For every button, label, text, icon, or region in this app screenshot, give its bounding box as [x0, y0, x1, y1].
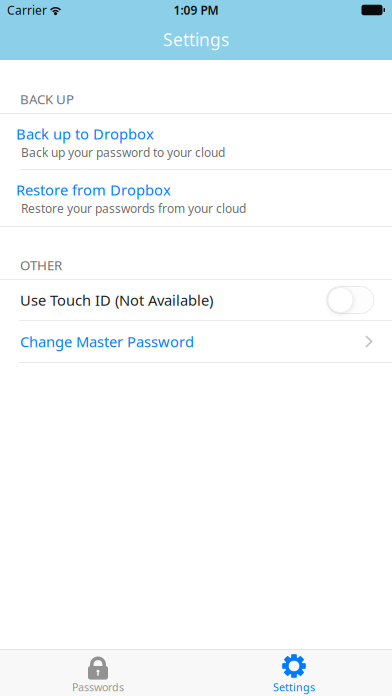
staticText: Carrier: [7, 2, 47, 18]
staticText: Back up your password to your cloud: [21, 144, 225, 160]
staticText: Change Master Password: [20, 332, 194, 351]
staticText: Settings: [163, 28, 229, 51]
staticText: Use Touch ID (Not Available): [20, 290, 213, 310]
button[interactable]: Back up to Dropbox: [0, 114, 392, 169]
staticText: Settings: [273, 680, 315, 694]
staticText: OTHER: [20, 256, 62, 274]
staticText: Restore your passwords from your cloud: [21, 200, 246, 216]
staticText: Back up to Dropbox: [16, 124, 154, 143]
button[interactable]: Use Touch ID (Not Available): [0, 280, 392, 320]
staticText: 1:09 PM: [173, 2, 218, 18]
staticText: Passwords: [72, 680, 124, 694]
staticText: Restore from Dropbox: [16, 180, 171, 199]
button[interactable]: Passwords: [0, 650, 196, 696]
button[interactable]: Change Master Password: [0, 321, 392, 362]
button[interactable]: Settings: [196, 650, 392, 696]
staticText: BACK UP: [20, 90, 74, 108]
button[interactable]: Restore from Dropbox: [0, 170, 392, 226]
